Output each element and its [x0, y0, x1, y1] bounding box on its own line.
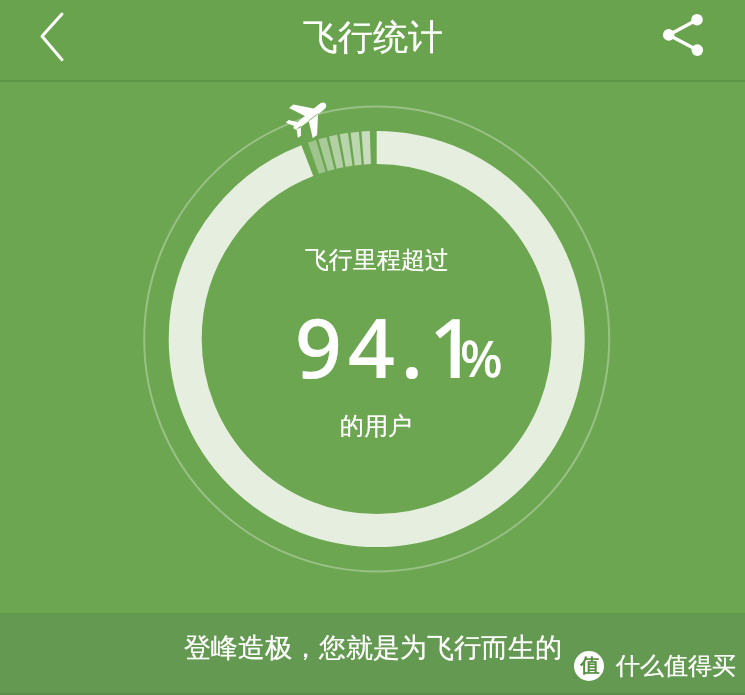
staticText: 飞行统计 — [303, 15, 443, 59]
staticText: 值 — [580, 654, 599, 678]
staticText: 什么值得买 — [616, 651, 736, 681]
button[interactable]: 登峰造极，您就是为飞行而生的 — [0, 613, 745, 695]
staticText: 登峰造极，您就是为飞行而生的 — [184, 631, 562, 665]
staticText: 的用户 — [340, 411, 412, 441]
staticText: 94.1 — [295, 290, 483, 402]
staticText: 飞行里程超过 — [305, 245, 449, 275]
button[interactable] — [28, 4, 76, 68]
button[interactable] — [648, 5, 710, 67]
staticText: % — [460, 324, 503, 392]
